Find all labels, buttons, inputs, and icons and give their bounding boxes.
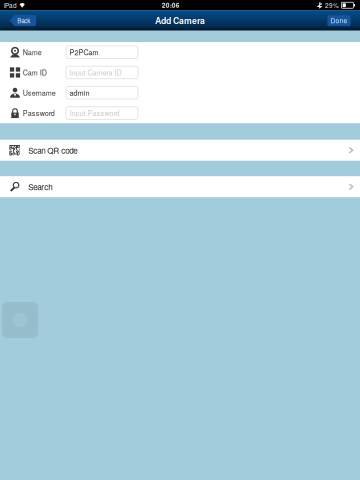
staticText: Back [17, 16, 30, 25]
staticText: Add Camera [155, 14, 205, 27]
staticText: Done [331, 16, 348, 25]
staticText: Cam ID [23, 67, 47, 77]
button[interactable]: Back [9, 15, 36, 26]
staticText: 20:06 [162, 1, 180, 10]
staticText: Scan QR code [28, 144, 77, 156]
staticText: admin [70, 88, 90, 98]
staticText: Input Password [70, 108, 120, 118]
button[interactable]: Search [0, 176, 360, 197]
staticText: Password [23, 108, 55, 118]
staticText: Name [23, 47, 42, 57]
button[interactable]: Scan QR code [0, 140, 360, 161]
staticText: Input Camera ID [70, 67, 122, 77]
staticText: Username [23, 88, 56, 98]
staticText: Search [28, 181, 52, 192]
staticText: iPad [4, 1, 17, 10]
staticText: 29% [325, 1, 339, 10]
button[interactable]: Done [327, 15, 351, 26]
staticText: P2PCam [70, 47, 99, 57]
